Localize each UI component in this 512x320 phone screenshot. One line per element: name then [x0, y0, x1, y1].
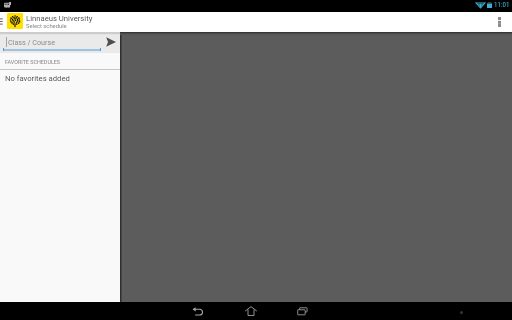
button[interactable]: Linnaeus University — [5, 12, 95, 32]
staticText: Class / Course — [8, 38, 55, 46]
button[interactable]: More options — [491, 12, 508, 32]
button[interactable]: No favorites added — [0, 70, 120, 87]
staticText: Linnaeus University — [26, 14, 93, 23]
button[interactable]: Home — [237, 302, 264, 320]
button[interactable]: Search schedule — [102, 34, 119, 50]
staticText: Select schedule — [26, 23, 67, 30]
staticText: 11:01 — [494, 1, 510, 9]
staticText: FAVORITE SCHEDULES — [5, 59, 61, 65]
button[interactable]: Back — [184, 302, 211, 320]
button[interactable]: Recent apps — [289, 302, 316, 320]
staticText: No favorites added — [5, 74, 70, 83]
button[interactable]: Class / Course — [0, 32, 120, 53]
button[interactable]: Notifications — [460, 311, 463, 314]
button[interactable]: Open navigation drawer — [0, 18, 3, 25]
